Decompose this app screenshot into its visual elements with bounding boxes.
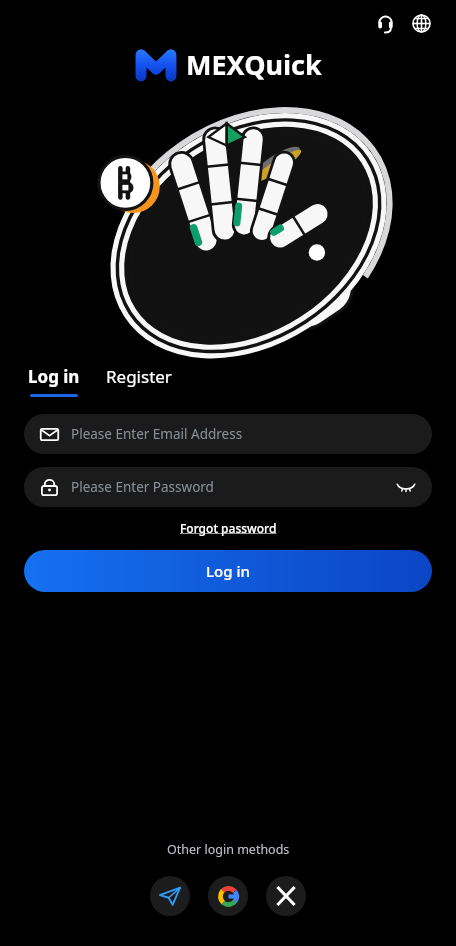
button[interactable]: Sign in with X <box>266 876 306 916</box>
staticText: Log in <box>206 561 250 581</box>
staticText: MEXQuick <box>186 46 322 83</box>
button[interactable]: Register <box>106 365 172 388</box>
staticText: Other login methods <box>167 841 290 858</box>
button[interactable]: Log in <box>24 550 432 592</box>
button[interactable]: Sign in with Telegram <box>150 876 190 916</box>
button[interactable]: Sign in with Google <box>208 876 248 916</box>
staticText: Register <box>106 365 172 388</box>
staticText: Please Enter Password <box>71 478 214 496</box>
button[interactable]: Forgot password <box>180 520 277 536</box>
staticText: Please Enter Email Address <box>71 425 243 443</box>
button[interactable]: Language <box>406 8 436 38</box>
button[interactable]: Please Enter Password <box>24 467 432 507</box>
button[interactable]: Log in <box>28 365 80 397</box>
button[interactable]: Customer support <box>370 8 400 38</box>
staticText: Forgot password <box>180 520 277 536</box>
staticText: Log in <box>28 365 80 388</box>
button[interactable]: Please Enter Email Address <box>24 414 432 454</box>
